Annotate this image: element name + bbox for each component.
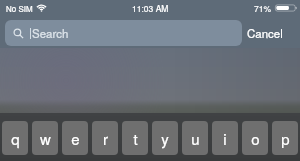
- button[interactable]: p: [272, 121, 298, 155]
- staticText: Search: [32, 25, 69, 41]
- staticText: w: [40, 128, 51, 149]
- staticText: 11:03 AM: [132, 2, 169, 14]
- staticText: o: [251, 128, 260, 149]
- button[interactable]: Search: [5, 20, 242, 46]
- staticText: u: [191, 128, 200, 149]
- staticText: t: [133, 128, 138, 149]
- button[interactable]: y: [152, 121, 178, 155]
- button[interactable]: o: [242, 121, 268, 155]
- staticText: 71%: [254, 2, 272, 14]
- button[interactable]: q: [2, 121, 28, 155]
- button[interactable]: Cancel: [242, 20, 288, 46]
- button[interactable]: u: [182, 121, 208, 155]
- staticText: e: [71, 128, 80, 149]
- staticText: r: [103, 128, 108, 149]
- staticText: q: [11, 128, 20, 149]
- button[interactable]: t: [122, 121, 148, 155]
- staticText: i: [223, 128, 227, 149]
- button[interactable]: w: [32, 121, 58, 155]
- staticText: Cancel: [247, 25, 283, 41]
- staticText: p: [281, 128, 290, 149]
- button[interactable]: r: [92, 121, 118, 155]
- button[interactable]: i: [212, 121, 238, 155]
- other: Wi-Fi: [36, 4, 47, 12]
- button[interactable]: e: [62, 121, 88, 155]
- staticText: No SIM: [6, 3, 33, 14]
- other: Battery: [275, 3, 297, 13]
- staticText: y: [161, 128, 169, 149]
